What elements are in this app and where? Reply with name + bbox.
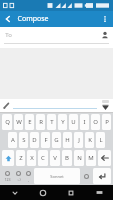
staticText: 123 bbox=[4, 177, 11, 182]
button[interactable]: K bbox=[85, 132, 94, 148]
staticText: F bbox=[44, 136, 48, 144]
staticText: Y bbox=[61, 118, 65, 126]
staticText: J bbox=[78, 136, 80, 144]
button[interactable]: E bbox=[25, 114, 34, 130]
staticText: C bbox=[41, 154, 45, 162]
staticText: Q bbox=[5, 118, 10, 126]
button[interactable]: S bbox=[19, 132, 28, 148]
button[interactable]: Emoji bbox=[14, 168, 23, 184]
staticText: N bbox=[77, 154, 82, 162]
button[interactable]: O bbox=[91, 114, 100, 130]
staticText: K bbox=[88, 136, 92, 144]
button[interactable]: Space bbox=[34, 168, 80, 184]
button[interactable]: T bbox=[47, 114, 56, 130]
button[interactable]: Enter bbox=[93, 168, 111, 184]
staticText: V bbox=[53, 154, 57, 162]
button[interactable]: F bbox=[41, 132, 50, 148]
button[interactable]: B bbox=[62, 150, 72, 166]
button[interactable]: C bbox=[38, 150, 48, 166]
button[interactable]: L bbox=[96, 132, 105, 148]
button[interactable]: Backspace bbox=[98, 150, 111, 166]
button[interactable]: Z bbox=[16, 150, 25, 166]
button[interactable]: Add contact bbox=[97, 27, 113, 43]
button[interactable]: Comma bbox=[25, 168, 32, 184]
button[interactable]: D bbox=[30, 132, 39, 148]
staticText: M bbox=[88, 154, 94, 162]
button[interactable]: Back bbox=[0, 11, 16, 27]
button[interactable]: G bbox=[52, 132, 61, 148]
button[interactable]: Shift bbox=[2, 150, 14, 166]
button[interactable]: H bbox=[63, 132, 72, 148]
staticText: D bbox=[32, 136, 37, 144]
staticText: I bbox=[83, 118, 86, 126]
staticText: P bbox=[105, 118, 109, 126]
staticText: T bbox=[50, 118, 54, 126]
staticText: H bbox=[65, 136, 70, 144]
button[interactable]: ?123 bbox=[2, 168, 12, 184]
staticText: U bbox=[71, 118, 76, 126]
staticText: O bbox=[93, 118, 98, 126]
staticText: :-) bbox=[17, 177, 21, 182]
staticText: B bbox=[65, 154, 69, 162]
button[interactable]: W bbox=[14, 114, 23, 130]
button[interactable]: Voice input bbox=[82, 168, 91, 184]
staticText: R bbox=[39, 118, 43, 126]
button[interactable]: Send bbox=[97, 99, 113, 112]
button[interactable]: More options bbox=[97, 11, 113, 27]
button[interactable]: Recents bbox=[57, 185, 85, 200]
button[interactable] bbox=[13, 99, 97, 112]
button[interactable]: Q bbox=[2, 114, 12, 130]
staticText: A bbox=[11, 136, 15, 144]
button[interactable]: A bbox=[8, 132, 17, 148]
button[interactable]: Y bbox=[58, 114, 67, 130]
button[interactable]: U bbox=[69, 114, 78, 130]
button[interactable]: Hide keyboard bbox=[0, 185, 29, 200]
button[interactable]: Keyboard bbox=[85, 185, 113, 200]
staticText: S bbox=[22, 136, 26, 144]
staticText: Z bbox=[19, 154, 23, 162]
staticText: X bbox=[30, 154, 34, 162]
staticText: Sonnet bbox=[50, 174, 64, 179]
button[interactable]: I bbox=[80, 114, 89, 130]
staticText: L bbox=[99, 136, 103, 144]
staticText: , bbox=[28, 177, 29, 182]
staticText: Compose bbox=[17, 14, 49, 24]
staticText: W bbox=[16, 118, 22, 126]
button[interactable]: Attach bbox=[0, 99, 13, 112]
button[interactable]: To bbox=[0, 27, 113, 43]
staticText: E bbox=[28, 118, 32, 126]
button[interactable]: V bbox=[50, 150, 60, 166]
staticText: G bbox=[54, 136, 59, 144]
button[interactable]: P bbox=[102, 114, 111, 130]
button[interactable]: M bbox=[86, 150, 96, 166]
button[interactable]: Home bbox=[29, 185, 57, 200]
button[interactable]: N bbox=[74, 150, 84, 166]
staticText: To bbox=[5, 31, 12, 39]
button[interactable]: X bbox=[27, 150, 36, 166]
button[interactable]: J bbox=[74, 132, 83, 148]
button[interactable]: R bbox=[36, 114, 45, 130]
